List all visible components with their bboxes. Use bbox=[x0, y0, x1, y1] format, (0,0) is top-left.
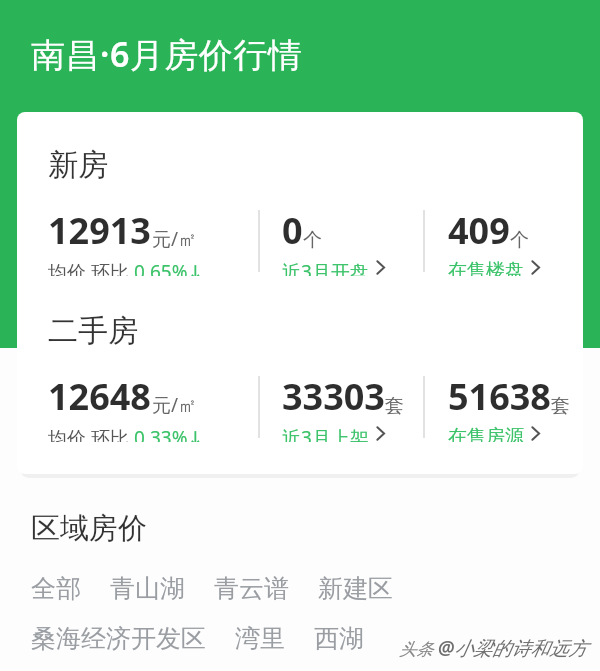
button[interactable]: 33303 bbox=[282, 372, 404, 442]
button[interactable]: 青云谱 bbox=[214, 573, 289, 604]
staticText: 近3月开盘 bbox=[282, 259, 369, 276]
button[interactable]: 青山湖 bbox=[110, 573, 185, 604]
button[interactable]: 51638 bbox=[448, 372, 570, 442]
staticText: 12648 bbox=[48, 372, 151, 421]
button[interactable]: 0 bbox=[282, 206, 385, 276]
staticText: 西湖 bbox=[314, 623, 364, 654]
button[interactable]: 全部 bbox=[31, 573, 81, 604]
staticText: 套 bbox=[385, 394, 404, 418]
staticText: 新房 bbox=[48, 146, 108, 184]
staticText: 新建区 bbox=[318, 573, 393, 604]
button[interactable]: 409 bbox=[448, 206, 540, 276]
staticText: 头条 bbox=[399, 637, 438, 660]
button[interactable]: 12913 bbox=[48, 206, 204, 276]
staticText: 桑海经济开发区 bbox=[31, 623, 206, 654]
staticText: 409 bbox=[448, 206, 510, 255]
staticText: 近3月上架 bbox=[282, 425, 369, 442]
staticText: 个 bbox=[510, 228, 529, 252]
staticText: @小梁的诗和远方 bbox=[438, 635, 588, 661]
button[interactable]: 西湖 bbox=[314, 623, 364, 654]
staticText: 0 bbox=[282, 206, 303, 255]
staticText: 南昌·6月房价行情 bbox=[31, 31, 303, 77]
staticText: 0.33%↓ bbox=[134, 425, 204, 442]
staticText: 湾里 bbox=[235, 623, 285, 654]
staticText: 青山湖 bbox=[110, 573, 185, 604]
staticText: 33303 bbox=[282, 372, 385, 421]
staticText: 元/㎡ bbox=[152, 226, 198, 252]
staticText: 区域房价 bbox=[31, 510, 147, 547]
staticText: 套 bbox=[551, 394, 570, 418]
staticText: 均价 环比 bbox=[48, 425, 134, 442]
staticText: 二手房 bbox=[48, 312, 138, 350]
staticText: 青云谱 bbox=[214, 573, 289, 604]
staticText: 12913 bbox=[48, 206, 151, 255]
staticText: 在售房源 bbox=[448, 425, 524, 442]
button[interactable]: 新建区 bbox=[318, 573, 393, 604]
staticText: 在售楼盘 bbox=[448, 259, 524, 276]
staticText: 均价 环比 bbox=[48, 259, 134, 276]
button[interactable]: 湾里 bbox=[235, 623, 285, 654]
staticText: 个 bbox=[303, 228, 322, 252]
staticText: 0.65%↓ bbox=[134, 259, 204, 276]
button[interactable]: 桑海经济开发区 bbox=[31, 623, 206, 654]
button[interactable]: 12648 bbox=[48, 372, 204, 442]
staticText: 51638 bbox=[448, 372, 551, 421]
staticText: 元/㎡ bbox=[152, 392, 198, 418]
staticText: 全部 bbox=[31, 573, 81, 604]
